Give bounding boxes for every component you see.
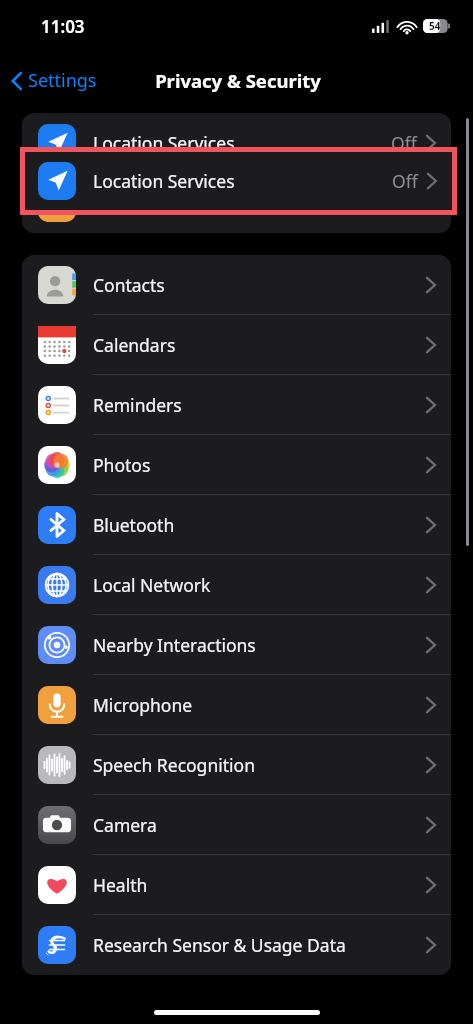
button[interactable]: Photos [22,435,451,495]
button[interactable]: Tracking [22,173,451,233]
staticText: Health [93,873,148,897]
staticText: Off [392,169,418,193]
staticText: Microphone [93,693,193,717]
button[interactable]: Location Services [22,113,451,173]
staticText: Nearby Interactions [93,633,256,657]
button[interactable]: Settings [8,68,97,93]
button[interactable]: Speech Recognition [22,735,451,795]
staticText: Local Network [93,573,211,597]
staticText: Off [391,131,417,155]
staticText: Reminders [93,393,182,417]
staticText: Privacy & Security [155,68,321,93]
staticText: Bluetooth [93,513,175,537]
button[interactable]: Location Services [25,152,452,210]
staticText: Photos [93,453,151,477]
staticText: Location Services [93,169,235,193]
button[interactable]: Contacts [22,255,451,315]
button[interactable]: Bluetooth [22,495,451,555]
staticText: 54 [429,19,441,33]
staticText: 11:03 [41,15,85,38]
button[interactable]: Microphone [22,675,451,735]
staticText: Settings [28,68,97,93]
staticText: Speech Recognition [93,753,255,777]
button[interactable]: Reminders [22,375,451,435]
staticText: Location Services [93,131,235,155]
staticText: Calendars [93,333,176,357]
button[interactable]: Camera [22,795,451,855]
button[interactable]: Research Sensor & Usage Data [22,915,451,975]
staticText: Research Sensor & Usage Data [93,933,346,957]
staticText: Camera [93,813,157,837]
staticText: Tracking [93,191,163,215]
staticText: Contacts [93,273,165,297]
button[interactable]: Local Network [22,555,451,615]
button[interactable]: Health [22,855,451,915]
other: Highlight Location Services [20,147,457,215]
button[interactable]: Calendars [22,315,451,375]
button[interactable]: Nearby Interactions [22,615,451,675]
